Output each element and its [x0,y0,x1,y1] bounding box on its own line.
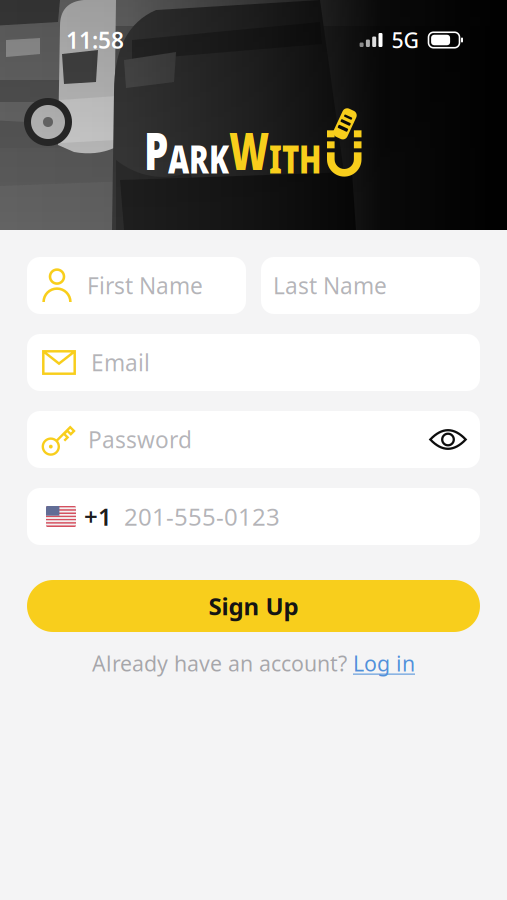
staticText: +1 [84,501,112,532]
staticText: 5G [391,26,419,54]
staticText: Sign Up [208,590,298,622]
staticText: Last Name [273,270,387,300]
staticText: Password [88,424,192,454]
button[interactable]: Show password [416,411,480,467]
button[interactable]: Log in [353,649,415,677]
staticText: ARK [168,145,229,184]
staticText: W [229,133,269,184]
staticText: P [144,133,168,184]
staticText: Log in [353,649,415,677]
staticText: ITH [269,145,321,184]
staticText: Email [91,347,150,377]
staticText: 201-555-0123 [124,501,280,532]
staticText: First Name [87,270,203,300]
staticText: 11:58 [66,25,124,55]
staticText: Already have an account? [92,649,347,677]
button[interactable]: Sign Up [27,580,480,632]
